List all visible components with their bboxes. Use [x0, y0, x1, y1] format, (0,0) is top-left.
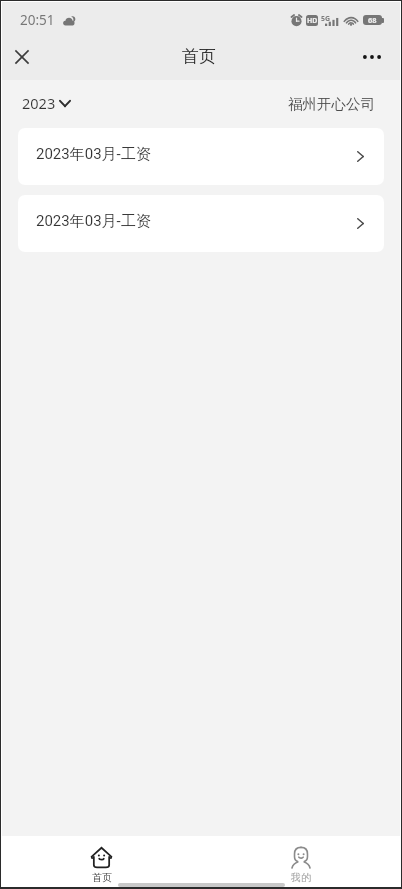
- staticText: 2023年03月-工资: [36, 212, 151, 231]
- staticText: 5G: [321, 14, 331, 24]
- staticText: HD: [307, 16, 318, 26]
- button[interactable]: 福州开心公司: [288, 95, 375, 113]
- button[interactable]: 2023年03月-工资: [18, 195, 384, 252]
- staticText: 20:51: [20, 11, 55, 29]
- button[interactable]: More options: [354, 34, 400, 80]
- staticText: 首页: [92, 871, 112, 884]
- staticText: 我的: [291, 871, 311, 884]
- staticText: 首页: [182, 46, 216, 67]
- button[interactable]: 2023年03月-工资: [18, 128, 384, 185]
- staticText: 68: [368, 15, 377, 25]
- staticText: 2023: [22, 93, 56, 113]
- button[interactable]: 2023: [22, 93, 71, 113]
- button[interactable]: Close: [2, 34, 48, 80]
- button[interactable]: 我的: [201, 836, 400, 887]
- staticText: 2023年03月-工资: [36, 145, 151, 164]
- button[interactable]: 首页: [2, 836, 201, 887]
